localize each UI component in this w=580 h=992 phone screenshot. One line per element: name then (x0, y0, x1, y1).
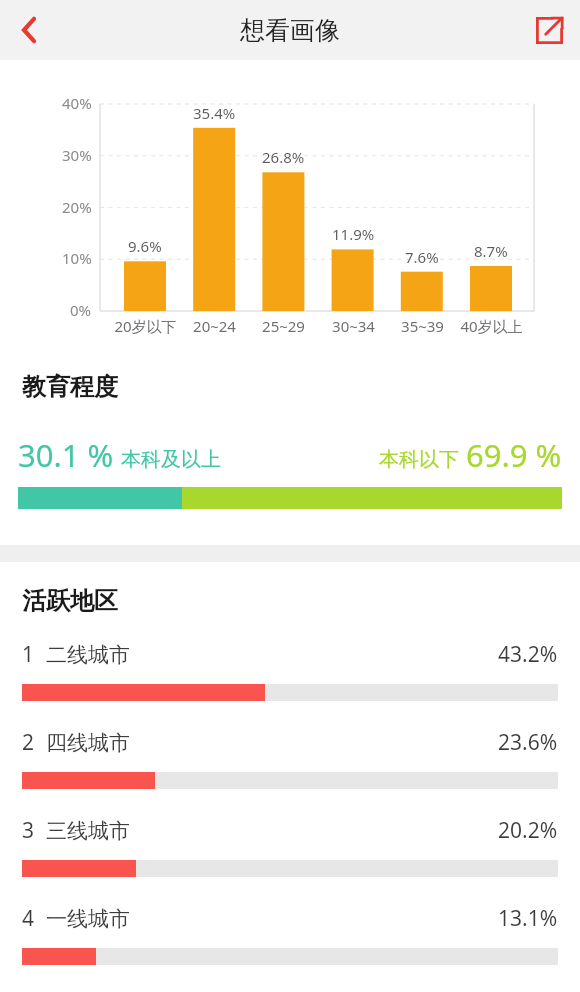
button[interactable]: 2 (0, 728, 580, 816)
button[interactable]: Share (518, 0, 580, 60)
staticText: 四线城市 (46, 730, 130, 756)
staticText: 9.6% (128, 236, 162, 256)
staticText: 13.1% (498, 904, 558, 933)
button[interactable]: Back (0, 0, 58, 60)
staticText: 20岁以下 (114, 316, 177, 336)
staticText: 30~34 (332, 316, 375, 336)
staticText: 本科以下 (379, 447, 459, 472)
staticText: 23.6% (498, 728, 558, 757)
staticText: 20.2% (498, 816, 558, 845)
staticText: 43.2% (498, 640, 558, 669)
staticText: 7.6% (405, 247, 439, 267)
staticText: 20~24 (193, 316, 236, 336)
staticText: 教育程度 (22, 372, 118, 402)
staticText: 25~29 (262, 316, 305, 336)
button[interactable]: 4 (0, 904, 580, 992)
staticText: 3 (22, 816, 35, 845)
staticText: 想看画像 (240, 15, 340, 46)
staticText: 26.8% (262, 147, 305, 167)
staticText: 二线城市 (46, 642, 130, 668)
staticText: 活跃地区 (22, 586, 118, 616)
staticText: 40% (62, 93, 92, 113)
staticText: 4 (22, 904, 35, 933)
staticText: 1 (22, 640, 35, 669)
staticText: 40岁以上 (460, 316, 523, 336)
button[interactable]: 3 (0, 816, 580, 904)
staticText: 2 (22, 728, 35, 757)
staticText: 10% (62, 248, 92, 268)
staticText: 0% (70, 300, 92, 320)
staticText: 11.9% (332, 224, 375, 244)
staticText: 35~39 (401, 316, 444, 336)
button[interactable]: 1 (0, 640, 580, 728)
staticText: 30.1 % (18, 434, 114, 476)
staticText: 本科及以上 (121, 447, 221, 472)
staticText: 20% (62, 197, 92, 217)
staticText: 30% (62, 145, 92, 165)
staticText: 35.4% (193, 103, 236, 123)
staticText: 8.7% (474, 241, 508, 261)
staticText: 69.9 % (466, 434, 562, 476)
staticText: 一线城市 (46, 906, 130, 932)
staticText: 三线城市 (46, 818, 130, 844)
